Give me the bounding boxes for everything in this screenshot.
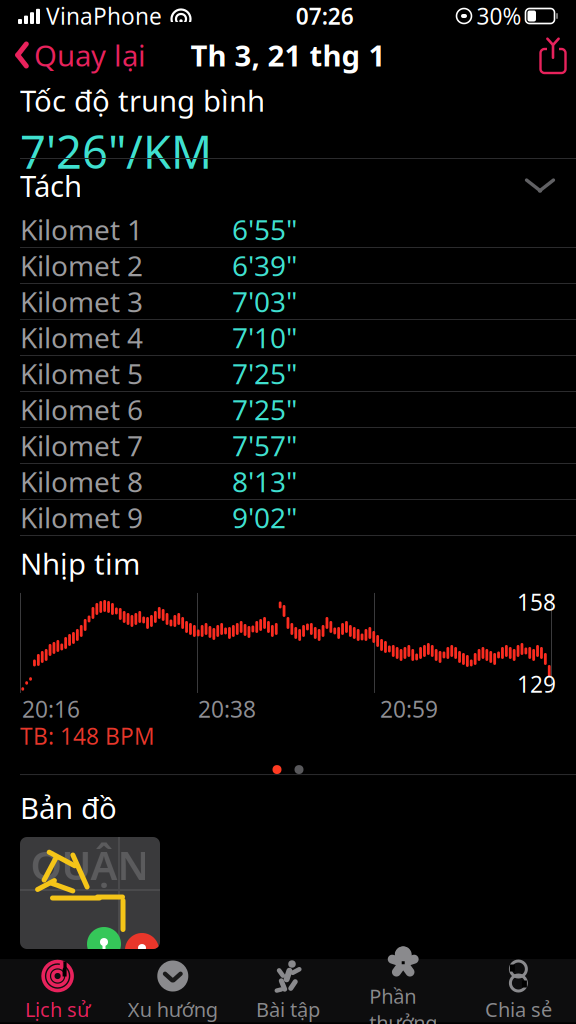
staticText: 129 xyxy=(517,669,556,699)
staticText: Kilomet 2 xyxy=(20,247,143,284)
staticText: Phần thưởng xyxy=(369,983,437,1024)
staticText: 8'13" xyxy=(232,463,297,500)
staticText: Kilomet 8 xyxy=(20,463,143,500)
staticText: 20:59 xyxy=(380,694,438,724)
staticText: 7'57" xyxy=(232,427,297,464)
button[interactable]: Kilomet 2 xyxy=(0,248,576,283)
button[interactable]: Quay lại xyxy=(0,33,160,77)
staticText: Kilomet 1 xyxy=(20,211,143,248)
button[interactable]: Kilomet 6 xyxy=(0,392,576,427)
staticText: Kilomet 7 xyxy=(20,427,143,464)
staticText: 20:16 xyxy=(22,694,80,724)
staticText: Xu hướng xyxy=(128,996,218,1023)
staticText: 30% xyxy=(476,1,521,31)
staticText: Quay lại xyxy=(34,35,146,74)
button[interactable]: Bản đồ lộ trình xyxy=(0,827,160,949)
button[interactable]: Lịch sử xyxy=(0,960,115,1022)
staticText: Th 3, 21 thg 1 xyxy=(190,35,385,74)
button[interactable]: Phần thưởng xyxy=(346,960,461,1022)
staticText: Chia sẻ xyxy=(485,996,552,1023)
staticText: Kilomet 9 xyxy=(20,499,143,536)
staticText: 7'25" xyxy=(232,355,297,392)
staticText: 158 xyxy=(517,587,556,617)
staticText: 9'02" xyxy=(232,499,297,536)
button[interactable]: Kilomet 1 xyxy=(0,212,576,247)
button[interactable]: Xu hướng xyxy=(115,960,230,1022)
staticText: Nhịp tim xyxy=(20,544,140,583)
button[interactable]: Chia sẻ xyxy=(461,960,576,1022)
button[interactable]: Chia sẻ xyxy=(530,33,576,77)
staticText: QUẬN xyxy=(30,838,149,891)
staticText: 7'10" xyxy=(232,319,297,356)
button[interactable]: Bài tập xyxy=(230,960,346,1022)
staticText: Kilomet 3 xyxy=(20,283,143,320)
staticText: Tách xyxy=(20,166,82,205)
button[interactable]: Kilomet 9 xyxy=(0,500,576,535)
staticText: 7'03" xyxy=(232,283,297,320)
button[interactable]: Kilomet 7 xyxy=(0,428,576,463)
staticText: VinaPhone xyxy=(46,1,162,31)
staticText: 20:38 xyxy=(198,694,256,724)
button[interactable]: Kilomet 3 xyxy=(0,284,576,319)
staticText: Kilomet 5 xyxy=(20,355,143,392)
staticText: Kilomet 4 xyxy=(20,319,143,356)
button[interactable]: Kilomet 8 xyxy=(0,464,576,499)
staticText: Tốc độ trung bình xyxy=(20,81,265,120)
staticText: 07:26 xyxy=(296,1,354,31)
staticText: Lịch sử xyxy=(25,996,90,1023)
button[interactable]: Kilomet 4 xyxy=(0,320,576,355)
staticText: Kilomet 6 xyxy=(20,391,143,428)
staticText: 7'26"/KM xyxy=(20,121,212,181)
staticText: 7'25" xyxy=(232,391,297,428)
button[interactable]: Tách xyxy=(0,159,576,212)
staticText: Bản đồ xyxy=(20,788,117,827)
button[interactable]: Kilomet 5 xyxy=(0,356,576,391)
staticText: TB: 148 BPM xyxy=(20,721,155,751)
staticText: Bài tập xyxy=(256,996,320,1023)
staticText: 6'55" xyxy=(232,211,297,248)
staticText: 6'39" xyxy=(232,247,297,284)
